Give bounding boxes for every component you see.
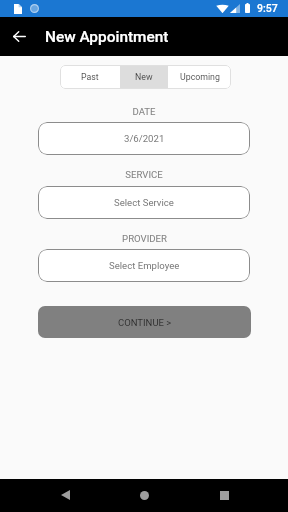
button[interactable]: Back (7, 24, 32, 49)
staticText: 9:57 (257, 2, 278, 14)
button[interactable]: Select Service (38, 186, 250, 219)
staticText: Upcoming (180, 72, 220, 82)
staticText: Select Service (114, 197, 174, 208)
button[interactable]: Recents (208, 479, 240, 511)
staticText: New (135, 72, 153, 82)
staticText: DATE (132, 106, 156, 117)
button[interactable]: Home (128, 479, 160, 511)
button[interactable]: CONTINUE > (38, 306, 251, 338)
staticText: PROVIDER (122, 233, 167, 244)
staticText: 3/6/2021 (124, 133, 165, 144)
button[interactable]: Upcoming (168, 65, 231, 89)
staticText: Select Employee (109, 260, 180, 271)
staticText: Past (81, 72, 99, 82)
staticText: CONTINUE > (118, 317, 172, 328)
button[interactable]: Select Employee (38, 249, 250, 282)
button[interactable]: Past (60, 65, 120, 89)
staticText: New Appointment (45, 28, 169, 46)
button[interactable]: New (120, 65, 168, 89)
button[interactable]: 3/6/2021 (38, 122, 250, 155)
staticText: SERVICE (125, 169, 163, 180)
button[interactable]: Back (49, 479, 81, 511)
